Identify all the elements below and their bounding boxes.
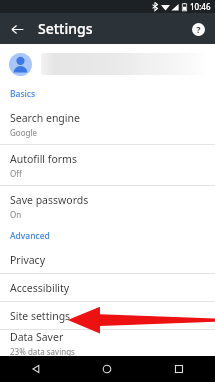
staticText: On [10, 209, 22, 220]
button[interactable] [0, 44, 215, 84]
staticText: 23% data savings [10, 346, 75, 356]
button[interactable]: Back [0, 356, 71, 382]
staticText: Site settings [10, 309, 71, 323]
staticText: 10:46 [190, 1, 211, 12]
staticText: Autofill forms [10, 152, 77, 166]
button[interactable]: Autofill forms [0, 145, 215, 185]
staticText: Search engine [10, 111, 80, 125]
staticText: Advanced [10, 230, 50, 242]
staticText: Off [10, 168, 22, 179]
staticText: Data Saver [10, 330, 64, 344]
button[interactable]: Help [186, 17, 210, 41]
button[interactable]: Site settings [0, 302, 215, 329]
button[interactable]: Data Saver [0, 330, 215, 356]
staticText: Settings [38, 19, 93, 38]
button[interactable]: Accessibility [0, 274, 215, 301]
staticText: Basics [10, 88, 36, 100]
button[interactable]: Search engine [0, 104, 215, 144]
staticText: Google [10, 127, 37, 138]
button[interactable]: Privacy [0, 246, 215, 273]
staticText: Save passwords [10, 193, 89, 207]
staticText: Privacy [10, 253, 46, 267]
button[interactable]: Save passwords [0, 186, 215, 226]
button[interactable]: Home [71, 356, 143, 382]
button[interactable]: Back [4, 16, 30, 42]
staticText: Accessibility [10, 281, 70, 295]
button[interactable]: Recent apps [143, 356, 215, 382]
staticText: ? [196, 23, 201, 35]
